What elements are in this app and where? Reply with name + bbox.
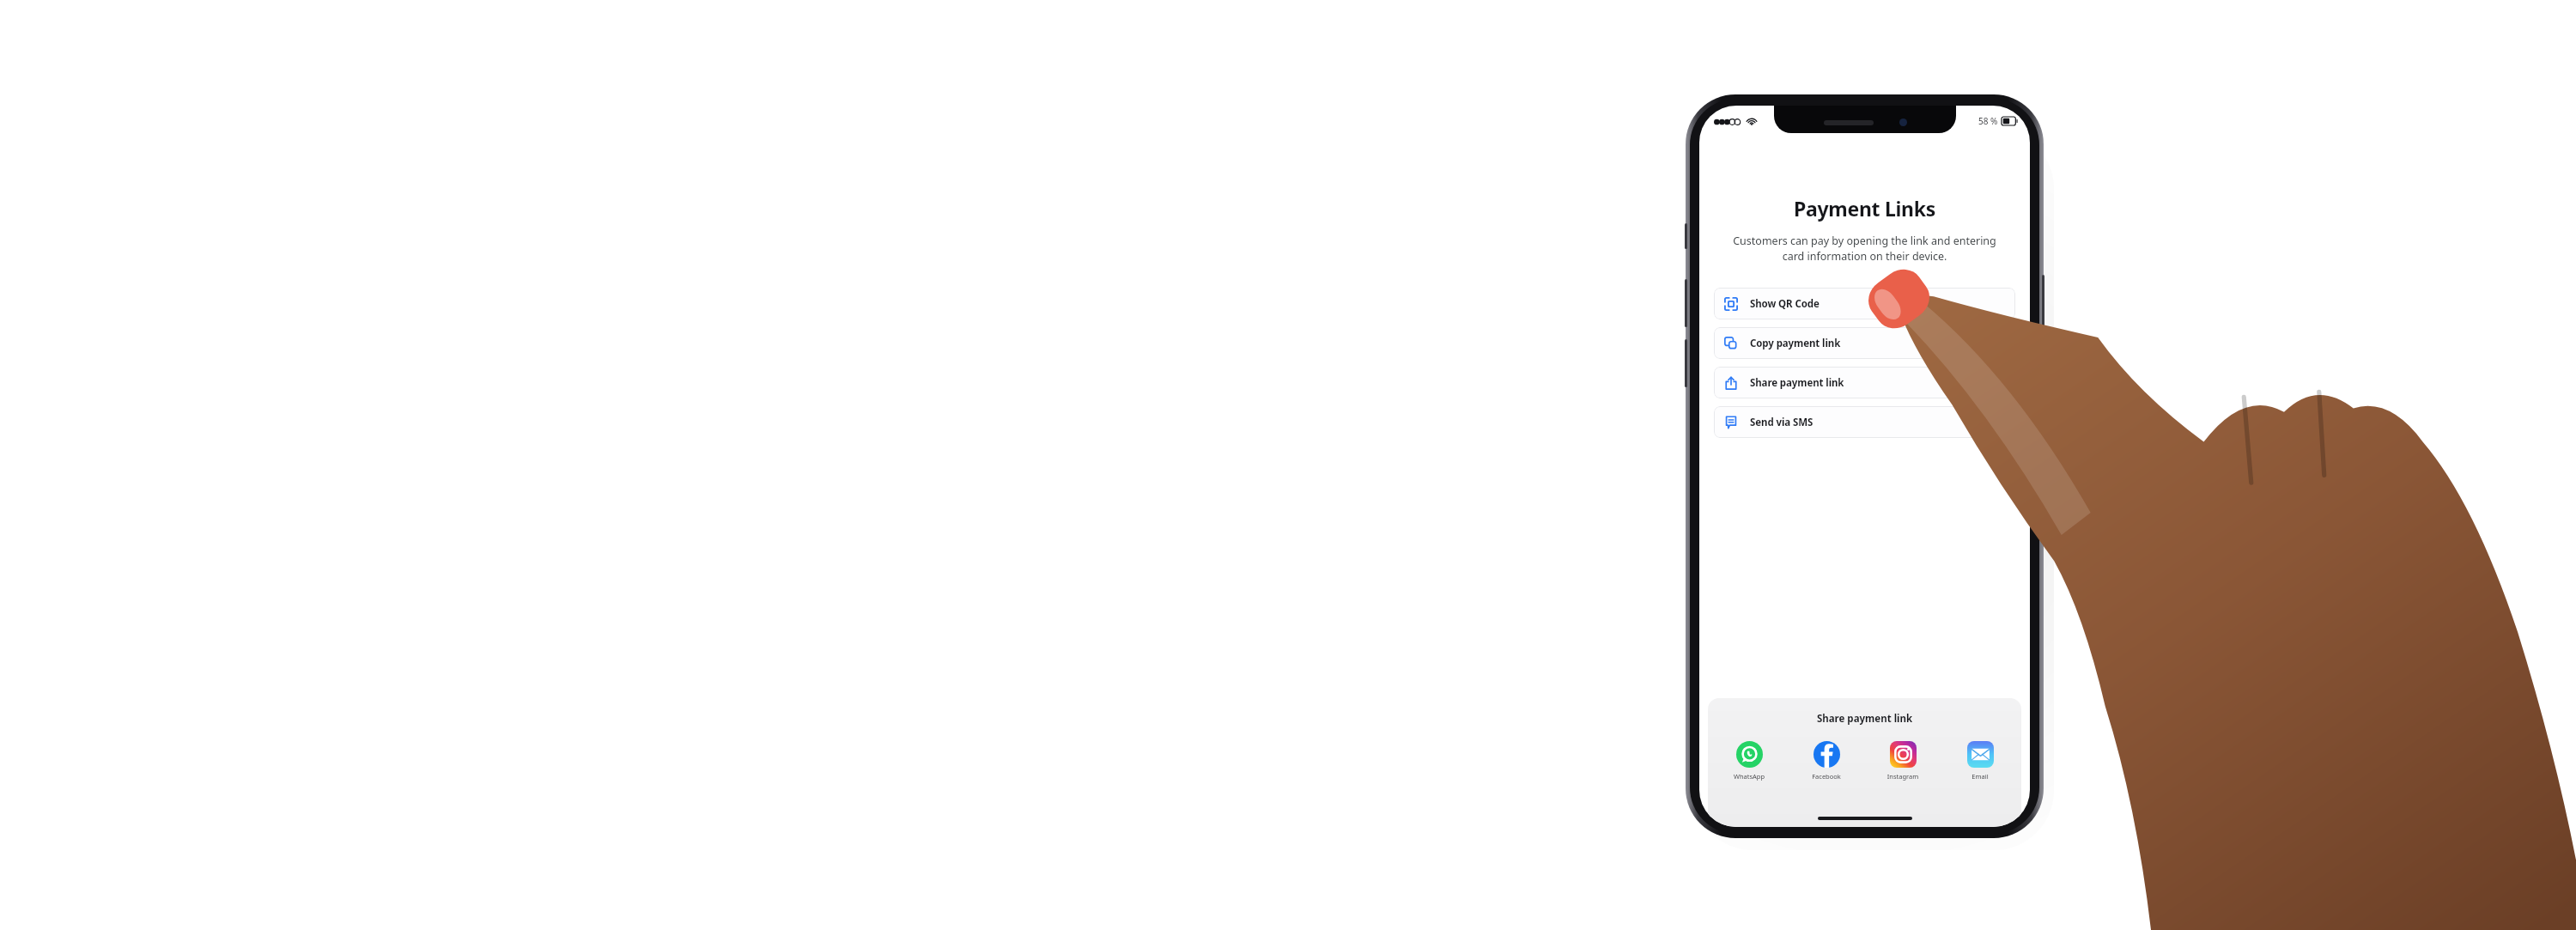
- button[interactable]: Share payment link: [1714, 367, 2015, 398]
- staticText: Payment Links: [1699, 195, 2030, 222]
- staticText: Email: [1954, 772, 2006, 781]
- staticText: WhatsApp: [1723, 772, 1775, 781]
- staticText: 58 %: [1978, 115, 1998, 127]
- staticText: Show QR Code: [1750, 297, 1820, 311]
- staticText: Share payment link: [1708, 712, 2021, 726]
- button[interactable]: Send via SMS: [1714, 406, 2015, 438]
- button[interactable]: Show QR Code: [1714, 288, 2015, 319]
- button[interactable]: Facebook: [1801, 741, 1852, 781]
- button[interactable]: Copy payment link: [1714, 327, 2015, 359]
- staticText: Customers can pay by opening the link an…: [1711, 234, 2018, 264]
- staticText: Send via SMS: [1750, 416, 1814, 429]
- staticText: Copy payment link: [1750, 337, 1841, 350]
- button[interactable]: Email: [1954, 741, 2006, 781]
- staticText: Instagram: [1877, 772, 1929, 781]
- button[interactable]: WhatsApp: [1723, 741, 1775, 781]
- button[interactable]: Instagram: [1877, 741, 1929, 781]
- staticText: Facebook: [1801, 772, 1852, 781]
- staticText: Share payment link: [1750, 376, 1844, 390]
